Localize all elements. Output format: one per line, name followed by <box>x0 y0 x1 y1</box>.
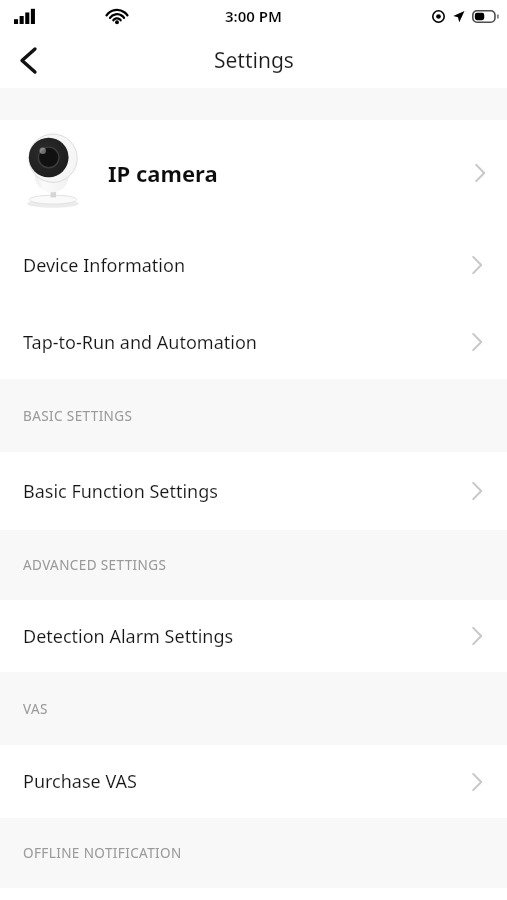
staticText: IP camera <box>108 158 218 188</box>
staticText: Purchase VAS <box>23 769 137 794</box>
staticText: Basic Function Settings <box>23 479 218 504</box>
staticText: Tap-to-Run and Automation <box>23 330 257 355</box>
staticText: VAS <box>23 700 48 718</box>
button[interactable]: IP camera <box>0 120 507 225</box>
staticText: ADVANCED SETTINGS <box>23 556 167 574</box>
button[interactable]: Basic Function Settings <box>0 452 507 530</box>
staticText: Settings <box>214 46 294 75</box>
button[interactable]: Back <box>0 32 56 88</box>
button[interactable]: Device Information <box>0 225 507 305</box>
button[interactable]: Purchase VAS <box>0 745 507 818</box>
button[interactable]: Tap-to-Run and Automation <box>0 305 507 379</box>
staticText: BASIC SETTINGS <box>23 407 133 425</box>
button[interactable]: Detection Alarm Settings <box>0 600 507 672</box>
staticText: Detection Alarm Settings <box>23 624 234 649</box>
staticText: Device Information <box>23 253 186 278</box>
staticText: OFFLINE NOTIFICATION <box>23 844 182 862</box>
staticText: 3:00 PM <box>225 6 282 26</box>
